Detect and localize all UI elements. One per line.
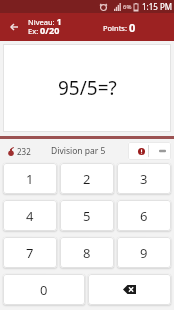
staticText: 9 [140,244,148,262]
staticText: 0 [40,281,48,299]
button[interactable]: 1 [3,163,57,194]
button[interactable]: 3 [117,163,171,194]
staticText: Ex: 0/20 [28,24,60,36]
staticText: 7 [26,244,34,262]
staticText: Division par 5 [51,145,106,157]
button[interactable]: Help [128,142,148,160]
staticText: 232 [17,146,31,157]
button[interactable]: 2 [60,163,114,194]
staticText: Points: [103,23,129,33]
button[interactable]: Backspace [88,274,171,305]
button[interactable]: 6 [117,200,171,231]
button[interactable]: Keyboard [149,142,171,160]
button[interactable]: 7 [3,237,57,268]
button[interactable]: 5 [60,200,114,231]
staticText: 6% [123,3,132,11]
staticText: 3 [140,170,148,188]
button[interactable]: 9 [117,237,171,268]
staticText: 5 [83,207,91,225]
button[interactable]: Back [0,13,27,41]
staticText: 1 [26,170,34,188]
staticText: Niveau: 1 [28,15,62,27]
button[interactable]: 4 [3,200,57,231]
staticText: 95/5=? [58,75,117,101]
staticText: 4 [26,207,34,225]
staticText: 8 [83,244,91,262]
staticText: 1:15 PM [142,1,173,12]
staticText: 6 [140,207,148,225]
button[interactable]: 0 [3,274,85,305]
staticText: 0 [129,20,136,35]
staticText: 2 [83,170,91,188]
button[interactable]: 8 [60,237,114,268]
